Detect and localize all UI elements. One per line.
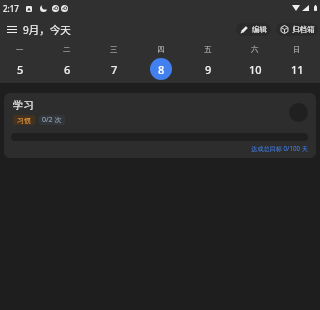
button[interactable]: Mark habit complete <box>289 103 308 122</box>
staticText: 编辑 <box>252 25 267 34</box>
staticText: 五 <box>204 45 212 54</box>
button[interactable]: 一 <box>0 42 43 80</box>
staticText: 8 <box>158 62 165 77</box>
button[interactable]: 编辑 <box>236 23 271 36</box>
staticText: 达成总目标 0/100 天 <box>251 144 308 152</box>
button[interactable]: Open navigation menu <box>3 20 21 38</box>
staticText: 一 <box>16 45 24 54</box>
staticText: 日 <box>293 45 301 54</box>
staticText: 9 <box>205 62 212 77</box>
button[interactable]: 日 <box>278 42 316 80</box>
staticText: 5 <box>17 62 24 77</box>
staticText: 11 <box>291 62 304 77</box>
staticText: 9月，今天 <box>23 22 71 37</box>
staticText: 2:17 <box>3 3 19 14</box>
staticText: 四 <box>157 45 165 54</box>
button[interactable]: 三 <box>90 42 137 80</box>
staticText: 三 <box>110 45 118 54</box>
staticText: 二 <box>63 45 71 54</box>
staticText: 7 <box>111 62 118 77</box>
staticText: 习惯 <box>17 116 31 125</box>
button[interactable]: 二 <box>43 42 90 80</box>
staticText: 6 <box>64 62 71 77</box>
button[interactable]: 四 <box>137 42 184 80</box>
button[interactable]: 五 <box>184 42 231 80</box>
staticText: 六 <box>251 45 259 54</box>
button[interactable]: 学习 <box>4 93 316 158</box>
staticText: 0/2 次 <box>42 115 62 125</box>
button[interactable]: 归档箱 <box>276 23 318 36</box>
staticText: 归档箱 <box>292 25 315 34</box>
staticText: 学习 <box>13 99 34 112</box>
button[interactable]: 六 <box>231 42 278 80</box>
staticText: 10 <box>249 62 262 77</box>
